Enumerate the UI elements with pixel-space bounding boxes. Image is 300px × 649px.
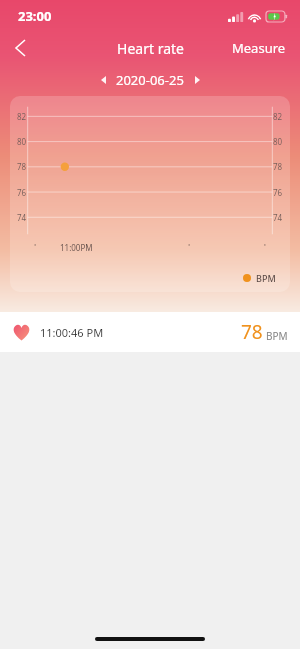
button[interactable]: Back — [0, 32, 40, 64]
staticText: 78 — [17, 161, 27, 172]
staticText: BPM — [256, 272, 276, 284]
staticText: 78 — [273, 161, 283, 172]
staticText: 76 — [273, 187, 283, 198]
staticText: 2020-06-25 — [116, 71, 184, 89]
button[interactable]: 11:00:46 PM — [0, 312, 300, 352]
staticText: 23:00 — [18, 7, 52, 25]
staticText: 82 — [17, 111, 27, 122]
staticText: 82 — [273, 111, 283, 122]
staticText: 80 — [273, 136, 283, 147]
staticText: 76 — [17, 187, 27, 198]
staticText: 74 — [273, 212, 283, 223]
button[interactable]: Measure — [218, 32, 300, 64]
staticText: BPM — [266, 329, 288, 343]
button[interactable]: 82 — [10, 96, 290, 292]
staticText: 11:00:46 PM — [40, 325, 104, 340]
staticText: Heart rate — [117, 39, 184, 58]
staticText: 74 — [17, 212, 27, 223]
button[interactable]: Next day — [186, 69, 208, 91]
staticText: Measure — [232, 39, 286, 57]
staticText: 80 — [17, 136, 27, 147]
button[interactable]: Previous day — [92, 69, 114, 91]
staticText: 78 — [241, 319, 263, 345]
staticText: 11:00PM — [60, 242, 93, 253]
